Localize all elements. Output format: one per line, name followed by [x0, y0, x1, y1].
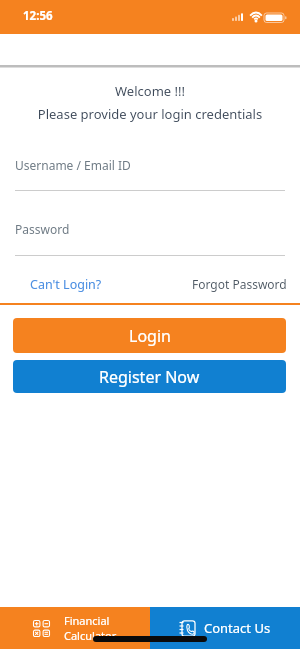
staticText: Please provide your login credentials — [0, 105, 300, 123]
staticText: Register Now — [99, 366, 200, 388]
staticText: Forgot Password — [192, 276, 287, 292]
button[interactable]: Can't Login? — [20, 270, 112, 299]
staticText: Calculator — [64, 628, 117, 643]
staticText: Username / Email ID — [15, 157, 131, 173]
staticText: Password — [15, 221, 70, 237]
staticText: 12:56 — [23, 8, 53, 24]
staticText: Contact Us — [204, 619, 271, 637]
staticText: Can't Login? — [30, 276, 102, 293]
button[interactable]: Register Now — [13, 360, 286, 393]
staticText: Login — [129, 325, 171, 347]
button[interactable]: Login — [13, 318, 286, 353]
staticText: Welcome !!! — [0, 82, 300, 100]
button[interactable]: Contact Us — [150, 607, 300, 649]
button[interactable]: Financial — [0, 607, 150, 649]
button[interactable]: Forgot Password — [182, 270, 297, 298]
staticText: Financial — [64, 613, 110, 628]
